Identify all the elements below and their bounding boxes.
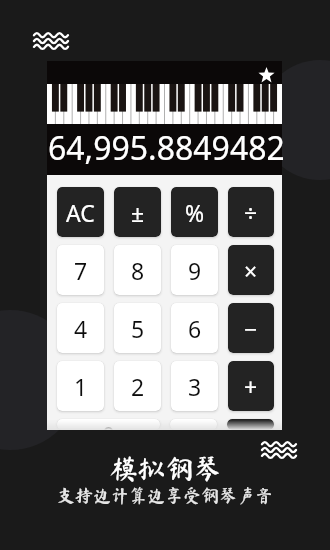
button[interactable]: × <box>228 245 274 295</box>
staticText: % <box>185 197 205 228</box>
button[interactable]: 7 <box>57 245 104 295</box>
staticText: 7 <box>74 255 88 286</box>
button[interactable]: AC <box>57 187 104 237</box>
staticText: 模拟钢琴 <box>109 454 222 482</box>
staticText: − <box>244 313 258 344</box>
button[interactable]: 3 <box>171 361 218 411</box>
button[interactable]: ± <box>114 187 161 237</box>
staticText: ± <box>131 197 145 228</box>
button[interactable]: 2 <box>114 361 161 411</box>
staticText: × <box>244 255 258 286</box>
staticText: 8 <box>131 255 145 286</box>
staticText: = <box>244 419 258 430</box>
button[interactable]: 4 <box>57 303 104 353</box>
button[interactable]: − <box>228 303 274 353</box>
staticText: 9 <box>188 255 202 286</box>
button[interactable]: . <box>170 419 217 430</box>
staticText: 2 <box>131 371 145 402</box>
staticText: 3 <box>188 371 202 402</box>
staticText: + <box>244 371 258 402</box>
staticText: . <box>190 419 197 430</box>
button[interactable]: 9 <box>171 245 218 295</box>
button[interactable]: 0 <box>57 419 160 430</box>
button[interactable]: 6 <box>171 303 218 353</box>
button[interactable]: 5 <box>114 303 161 353</box>
button[interactable]: 8 <box>114 245 161 295</box>
staticText: 1 <box>74 371 88 402</box>
staticText: ÷ <box>244 197 258 228</box>
staticText: 6 <box>188 313 202 344</box>
staticText: 5 <box>131 313 145 344</box>
button[interactable]: ÷ <box>228 187 274 237</box>
button[interactable]: = <box>227 419 274 430</box>
staticText: 支持边计算边享受钢琴声音 <box>57 486 273 504</box>
button[interactable]: % <box>171 187 218 237</box>
staticText: AC <box>66 197 95 228</box>
staticText: 4 <box>74 313 88 344</box>
staticText: 64,995.8849482 <box>48 126 283 170</box>
button[interactable]: + <box>228 361 274 411</box>
button[interactable]: 1 <box>57 361 104 411</box>
staticText: 0 <box>102 419 116 430</box>
